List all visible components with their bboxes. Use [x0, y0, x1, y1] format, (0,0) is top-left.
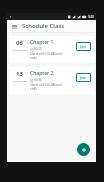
- staticText: SEPTEMBER: [13, 48, 27, 51]
- staticText: 13: [16, 70, 23, 78]
- button[interactable]: Add class: [77, 143, 90, 156]
- button[interactable]: Join: [76, 42, 91, 51]
- button[interactable]: 13: [9, 67, 94, 94]
- staticText: Starts at 09:30 AM and: [30, 83, 62, 87]
- staticText: Starts at 09:30 AM and: [30, 52, 62, 56]
- staticText: 09:30: [34, 78, 42, 82]
- staticText: ends: [30, 56, 37, 60]
- button[interactable]: 06: [9, 36, 94, 63]
- staticText: 9:30: [88, 15, 94, 19]
- staticText: Join: [80, 75, 87, 80]
- staticText: Chapter 2: [30, 70, 54, 77]
- staticText: Schedule Class: [22, 22, 65, 30]
- staticText: ends: [30, 87, 37, 91]
- staticText: Join: [80, 44, 87, 49]
- staticText: Chapter 1: [30, 39, 54, 46]
- button[interactable]: Join: [76, 73, 91, 82]
- staticText: 09:30: [34, 47, 42, 51]
- button[interactable]: Open navigation menu: [10, 22, 19, 31]
- staticText: SEPTEMBER: [13, 79, 27, 82]
- staticText: 06: [16, 39, 23, 47]
